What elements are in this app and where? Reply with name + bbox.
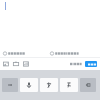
button[interactable]: Voice input [20, 78, 38, 92]
button[interactable] [50, 50, 94, 57]
button[interactable]: Add photo [2, 60, 9, 67]
button[interactable]: Backspace [80, 78, 96, 92]
button[interactable] [3, 50, 37, 57]
button[interactable] [85, 61, 97, 67]
button[interactable]: Symbols [60, 78, 78, 92]
button[interactable]: Add GIF [12, 60, 19, 67]
button[interactable]: Add poll [22, 60, 29, 67]
button[interactable]: Tab [2, 78, 18, 92]
button[interactable]: Kana key [40, 78, 58, 92]
